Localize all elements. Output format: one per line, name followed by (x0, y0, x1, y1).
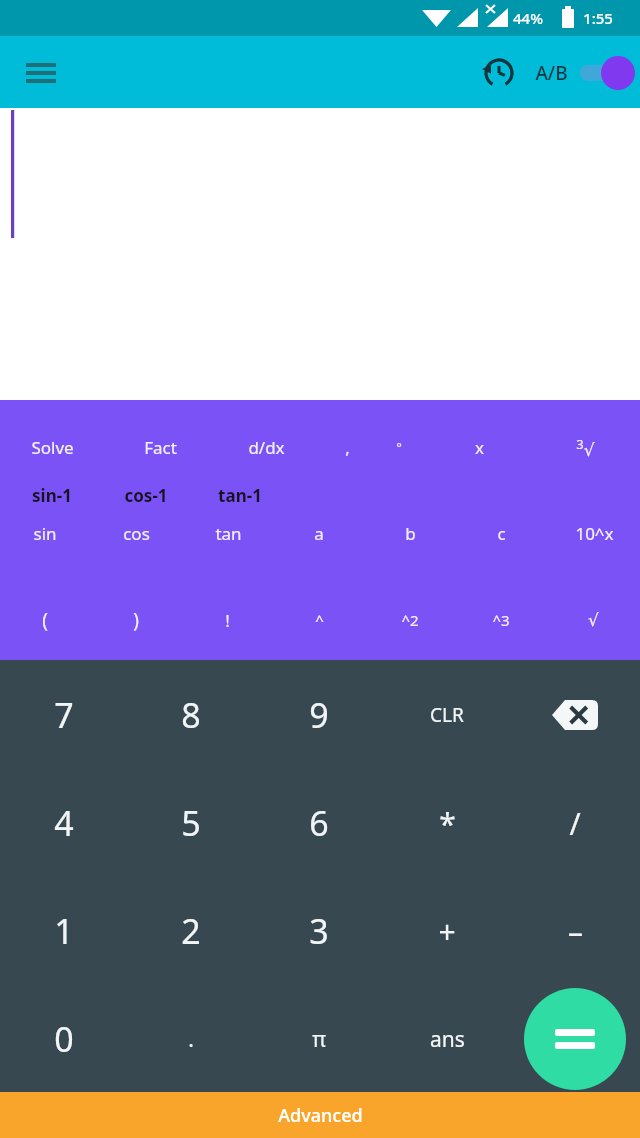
button[interactable]: 7 (4, 665, 124, 765)
button[interactable]: Equals (524, 988, 626, 1090)
button[interactable]: 6 (259, 773, 379, 873)
staticText: 1:55 (583, 8, 613, 28)
staticText: 3 (309, 908, 329, 954)
button[interactable]: ^ (279, 594, 359, 646)
button[interactable]: Solve (2, 421, 102, 473)
button[interactable]: A/B (526, 54, 576, 92)
button[interactable]: √ (553, 594, 633, 646)
staticText: + (438, 911, 456, 952)
staticText: 6 (309, 800, 329, 846)
button[interactable]: 2 (131, 881, 251, 981)
staticText: cos-1 (124, 484, 168, 507)
staticText: x (475, 436, 484, 459)
button[interactable]: ^3 (461, 594, 541, 646)
staticText: tan-1 (218, 484, 262, 507)
button[interactable]: 10^x (550, 510, 638, 556)
staticText: 3√ (576, 435, 595, 460)
staticText: / (569, 803, 581, 844)
staticText: Solve (31, 436, 74, 459)
staticText: ( (42, 607, 48, 633)
button[interactable] (0, 108, 640, 400)
button[interactable]: ° (364, 421, 434, 473)
button[interactable]: cos (91, 510, 181, 556)
staticText: 5 (181, 800, 201, 846)
button[interactable]: / (515, 773, 635, 873)
button[interactable]: tan-1 (190, 471, 290, 519)
button[interactable]: ^2 (370, 594, 450, 646)
button[interactable]: 1 (4, 881, 124, 981)
staticText: sin (33, 522, 57, 545)
staticText: – (568, 911, 583, 952)
button[interactable]: * (387, 773, 507, 873)
staticText: , (345, 436, 350, 459)
button[interactable]: a (279, 510, 359, 556)
button[interactable]: cos-1 (96, 471, 196, 519)
button[interactable]: . (131, 989, 251, 1089)
button[interactable]: 3 (259, 881, 379, 981)
button[interactable]: ( (0, 594, 90, 646)
button[interactable]: x (444, 421, 514, 473)
staticText: 44% (513, 8, 543, 28)
button[interactable]: b (370, 510, 450, 556)
staticText: a (314, 522, 324, 545)
staticText: 0 (54, 1016, 74, 1062)
staticText: ans (430, 1025, 465, 1054)
button[interactable]: ) (91, 594, 181, 646)
staticText: c (497, 522, 506, 545)
staticText: Advanced (278, 1103, 363, 1128)
button[interactable]: c (461, 510, 541, 556)
button[interactable]: – (515, 881, 635, 981)
button[interactable]: 0 (4, 989, 124, 1089)
staticText: ^2 (401, 610, 419, 630)
staticText: 1 (54, 908, 74, 954)
staticText: Fact (144, 436, 177, 459)
button[interactable]: Menu (17, 49, 65, 97)
button[interactable]: 8 (131, 665, 251, 765)
button[interactable]: 9 (259, 665, 379, 765)
button[interactable]: 4 (4, 773, 124, 873)
staticText: b (405, 522, 416, 545)
staticText: ° (396, 438, 402, 456)
staticText: CLR (430, 702, 464, 728)
button[interactable]: tan (183, 510, 273, 556)
button[interactable]: Advanced (0, 1092, 640, 1138)
button[interactable]: d/dx (218, 421, 314, 473)
staticText: ! (225, 609, 230, 632)
staticText: ) (133, 607, 139, 633)
staticText: 10^x (575, 522, 614, 545)
staticText: A/B (535, 60, 568, 86)
staticText: 7 (54, 692, 74, 738)
staticText: * (439, 803, 456, 844)
staticText: √ (588, 610, 599, 630)
staticText: . (188, 1025, 194, 1054)
staticText: d/dx (248, 436, 285, 459)
staticText: 8 (181, 692, 201, 738)
button[interactable]: Fact (112, 421, 208, 473)
button[interactable]: CLR (387, 665, 507, 765)
button[interactable]: sin (0, 510, 90, 556)
staticText: π (312, 1025, 326, 1054)
button[interactable]: + (387, 881, 507, 981)
button[interactable]: Toggle A/B (578, 52, 632, 94)
button[interactable]: π (259, 989, 379, 1089)
staticText: ^ (315, 610, 324, 630)
button[interactable]: , (312, 421, 382, 473)
staticText: 4 (54, 800, 74, 846)
button[interactable]: History (476, 50, 522, 96)
button[interactable]: Backspace (515, 665, 635, 765)
staticText: tan (215, 522, 242, 545)
staticText: ^3 (492, 610, 510, 630)
staticText: 9 (309, 692, 329, 738)
staticText: sin-1 (32, 484, 72, 507)
button[interactable]: ! (182, 594, 272, 646)
button[interactable]: 5 (131, 773, 251, 873)
button[interactable]: 3√ (550, 421, 620, 473)
button[interactable]: sin-1 (2, 471, 102, 519)
button[interactable]: ans (387, 989, 507, 1089)
staticText: 2 (181, 908, 201, 954)
staticText: cos (123, 522, 150, 545)
